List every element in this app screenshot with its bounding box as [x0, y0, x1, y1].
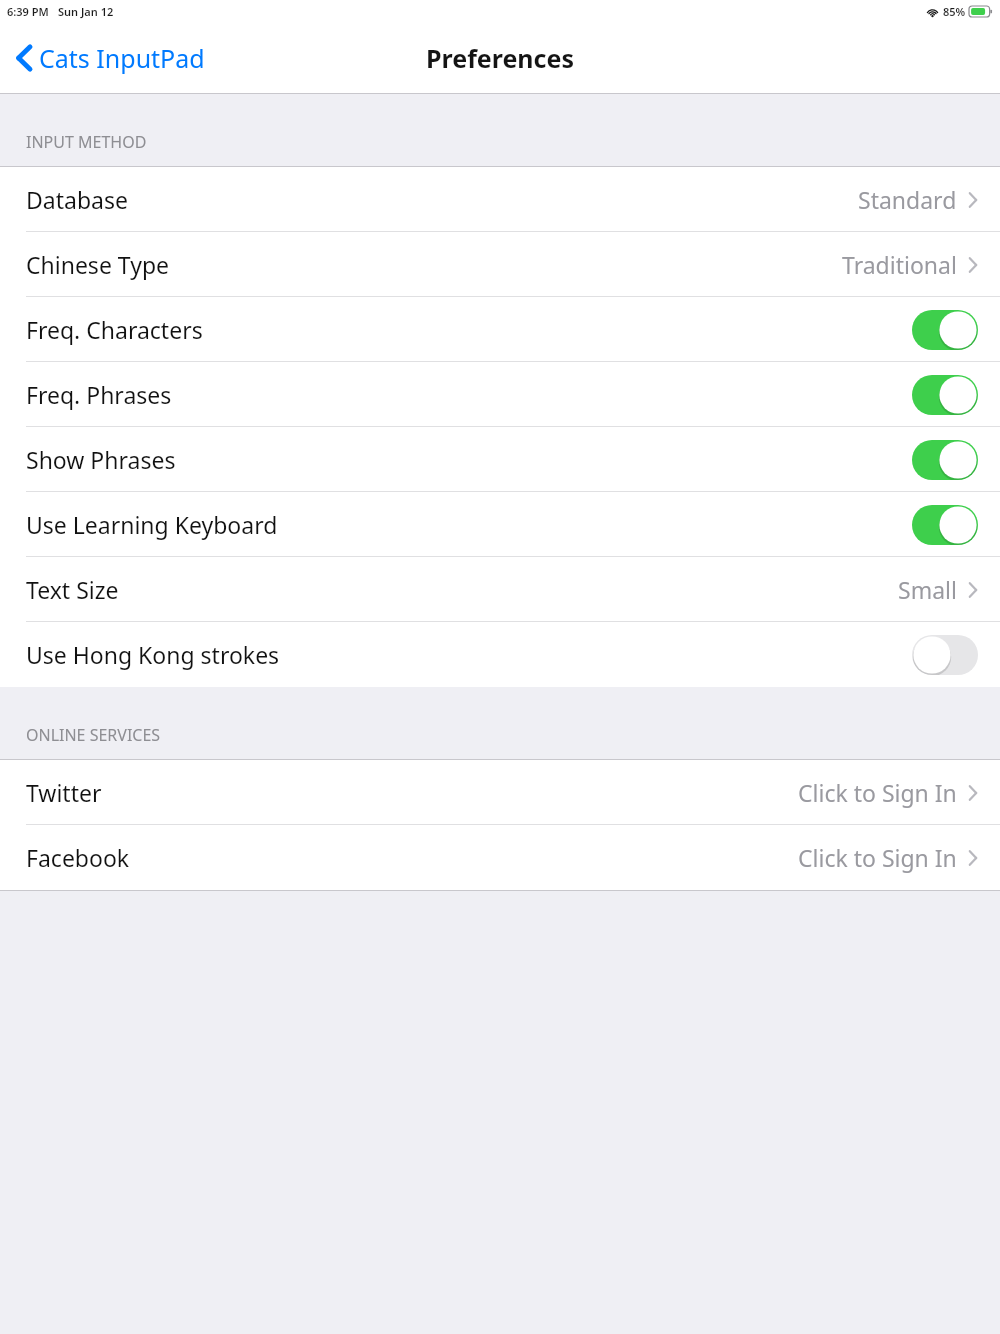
button[interactable]: Twitter [0, 760, 1000, 825]
staticText: INPUT METHOD [26, 131, 147, 153]
button[interactable]: Show Phrases [0, 427, 1000, 492]
staticText: Click to Sign In [798, 777, 957, 808]
button[interactable]: Database [0, 167, 1000, 232]
staticText: Facebook [26, 842, 130, 873]
button[interactable]: Chinese Type [0, 232, 1000, 297]
staticText: Show Phrases [26, 444, 176, 475]
staticText: Use Hong Kong strokes [26, 639, 280, 670]
button[interactable]: Use Learning Keyboard [0, 492, 1000, 557]
staticText: Sun Jan 12 [58, 4, 114, 19]
staticText: Twitter [26, 777, 102, 808]
button[interactable]: On [912, 310, 978, 350]
button[interactable]: Text Size [0, 557, 1000, 622]
staticText: ONLINE SERVICES [26, 724, 161, 746]
staticText: Traditional [842, 249, 957, 280]
staticText: Text Size [26, 574, 119, 605]
staticText: Chinese Type [26, 249, 170, 280]
staticText: Cats InputPad [39, 41, 205, 75]
button[interactable]: Freq. Phrases [0, 362, 1000, 427]
button[interactable]: Facebook [0, 825, 1000, 890]
button[interactable]: On [912, 505, 978, 545]
staticText: Click to Sign In [798, 842, 957, 873]
staticText: Use Learning Keyboard [26, 509, 278, 540]
button[interactable]: Cats InputPad [0, 33, 221, 83]
staticText: Database [26, 184, 128, 215]
button[interactable]: Off [912, 635, 978, 675]
button[interactable]: Freq. Characters [0, 297, 1000, 362]
button[interactable]: On [912, 440, 978, 480]
staticText: 6:39 PM [7, 4, 49, 19]
button[interactable]: Use Hong Kong strokes [0, 622, 1000, 687]
staticText: Preferences [426, 41, 574, 75]
staticText: Freq. Characters [26, 314, 203, 345]
staticText: Standard [858, 184, 957, 215]
staticText: Freq. Phrases [26, 379, 172, 410]
button[interactable]: On [912, 375, 978, 415]
staticText: Small [898, 574, 957, 605]
staticText: 85% [943, 4, 966, 19]
